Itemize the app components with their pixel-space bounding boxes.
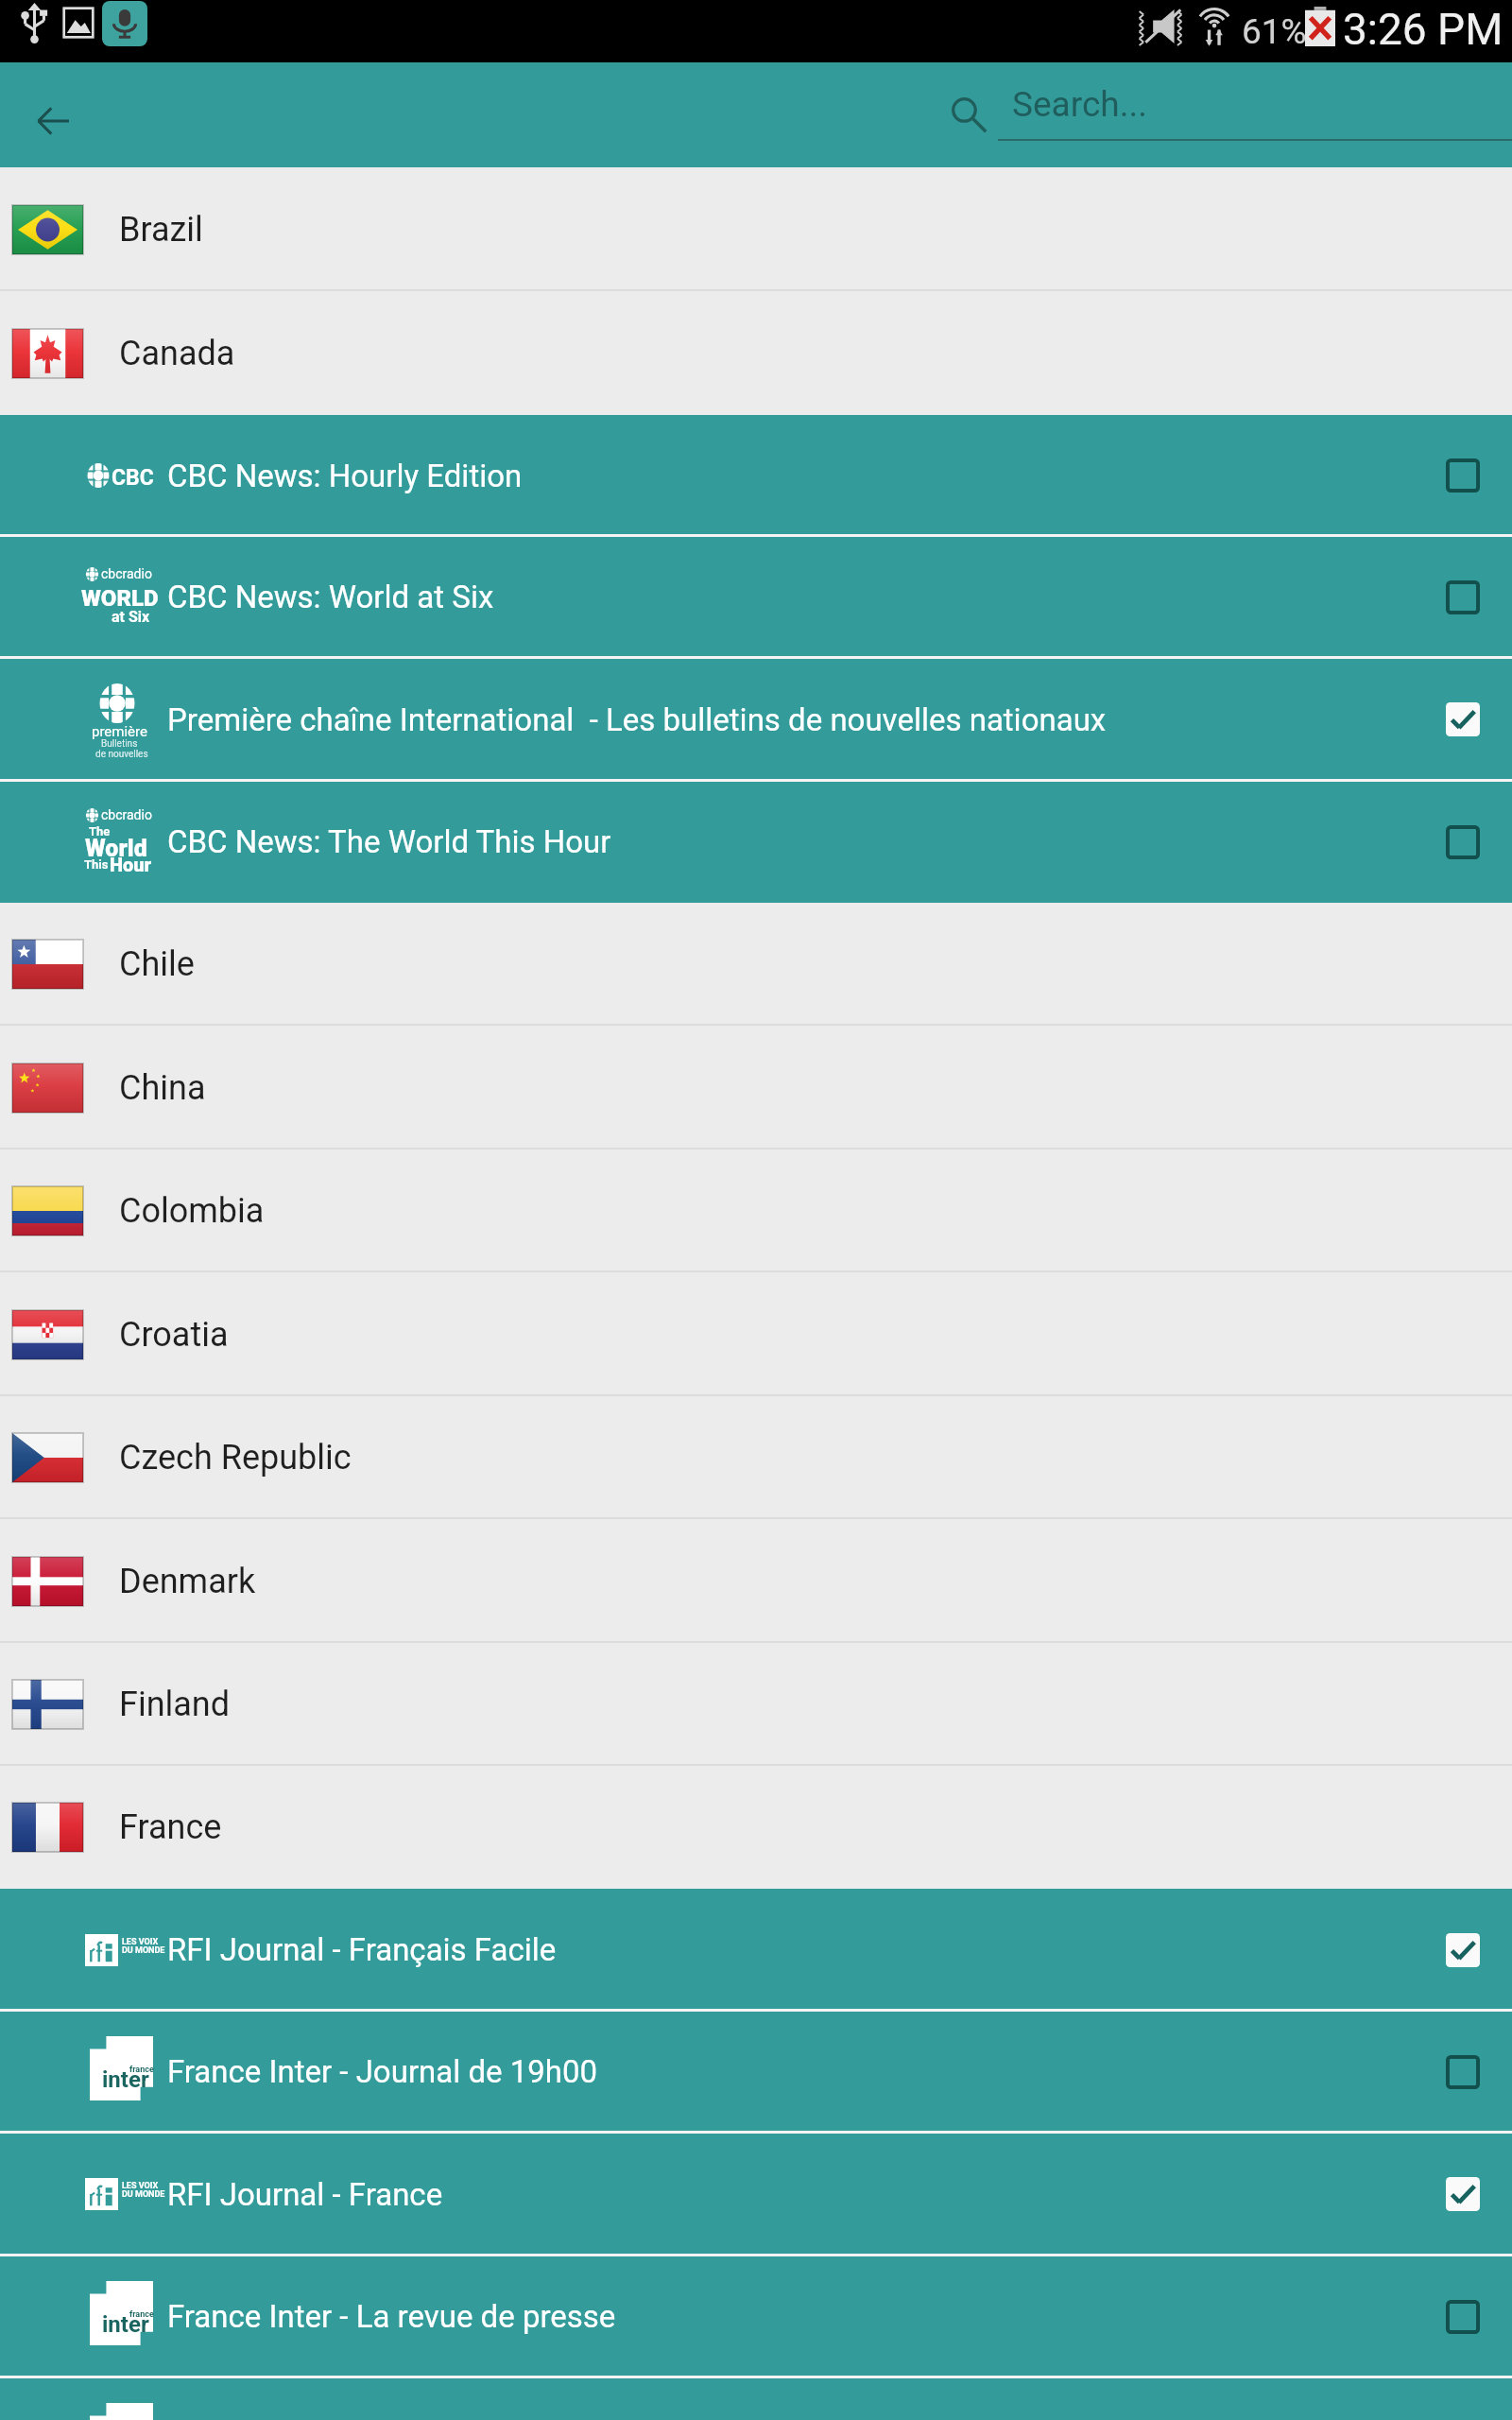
staticText: DU MONDE bbox=[122, 2189, 165, 2200]
button[interactable]: cbcradio bbox=[0, 781, 1512, 903]
staticText: Hour bbox=[110, 854, 152, 875]
staticText: DU MONDE bbox=[122, 1945, 165, 1956]
staticText: This bbox=[84, 857, 109, 872]
button[interactable]: Colombia bbox=[0, 1149, 1512, 1272]
button[interactable]: Czech Republic bbox=[0, 1396, 1512, 1519]
staticText: première bbox=[92, 723, 147, 740]
staticText: CBC News: World at Six bbox=[167, 579, 1446, 615]
staticText: Croatia bbox=[119, 1315, 229, 1355]
staticText: france bbox=[129, 2309, 154, 2320]
staticText: CBC News: Hourly Edition bbox=[167, 458, 1446, 494]
button[interactable]: LES VOIX bbox=[0, 1889, 1512, 2011]
staticText: LES VOIX bbox=[122, 2181, 159, 2191]
staticText: Première chaîne International - Les bull… bbox=[167, 701, 1446, 738]
staticText: at Six bbox=[112, 608, 150, 626]
button[interactable]: France bbox=[0, 1766, 1512, 1889]
staticText: CBC bbox=[112, 465, 154, 491]
button[interactable]: cbcradio bbox=[0, 536, 1512, 658]
staticText: Search... bbox=[1012, 84, 1147, 125]
staticText: RFI Journal - France bbox=[167, 2176, 1446, 2213]
button[interactable]: france bbox=[0, 2377, 1512, 2420]
staticText: Bulletins bbox=[101, 738, 138, 750]
staticText: cbcradio bbox=[101, 566, 152, 581]
staticText: France bbox=[119, 1807, 222, 1847]
staticText: WORLD bbox=[81, 585, 155, 612]
staticText: Colombia bbox=[119, 1191, 265, 1231]
staticText: Finland bbox=[119, 1685, 231, 1724]
button[interactable]: Brazil bbox=[0, 167, 1512, 291]
button[interactable]: Chile bbox=[0, 903, 1512, 1026]
staticText: France Inter - Journal de 19h00 bbox=[167, 2053, 1446, 2090]
staticText: france bbox=[129, 2065, 154, 2075]
button[interactable]: LES VOIX bbox=[0, 2133, 1512, 2256]
button[interactable]: Navigate back bbox=[13, 81, 93, 161]
button[interactable]: france bbox=[0, 2011, 1512, 2133]
button[interactable]: france bbox=[0, 2256, 1512, 2377]
button[interactable]: Canada bbox=[0, 291, 1512, 415]
button[interactable]: CBC bbox=[0, 415, 1512, 536]
staticText: RFI Journal - Français Facile bbox=[167, 1931, 1446, 1968]
staticText: LES VOIX bbox=[122, 1937, 159, 1947]
button[interactable]: Croatia bbox=[0, 1272, 1512, 1396]
staticText: inter bbox=[102, 2066, 149, 2093]
button[interactable]: Finland bbox=[0, 1643, 1512, 1766]
staticText: 61% bbox=[1242, 11, 1307, 52]
staticText: 3:26 PM bbox=[1343, 4, 1503, 55]
staticText: The bbox=[89, 824, 111, 838]
staticText: Czech Republic bbox=[119, 1438, 352, 1478]
staticText: CBC News: The World This Hour bbox=[167, 823, 1446, 860]
staticText: inter bbox=[102, 2311, 149, 2338]
staticText: France Inter - La revue de presse bbox=[167, 2298, 1446, 2335]
button[interactable]: China bbox=[0, 1026, 1512, 1149]
staticText: World bbox=[85, 835, 147, 862]
staticText: Chile bbox=[119, 944, 195, 984]
staticText: Brazil bbox=[119, 210, 203, 250]
button[interactable]: Denmark bbox=[0, 1519, 1512, 1643]
staticText: de nouvelles bbox=[95, 749, 148, 760]
button[interactable]: Search bbox=[935, 80, 1003, 148]
staticText: cbcradio bbox=[101, 807, 152, 822]
staticText: China bbox=[119, 1068, 206, 1108]
staticText: Denmark bbox=[119, 1562, 256, 1601]
staticText: Canada bbox=[119, 334, 235, 373]
button[interactable]: première bbox=[0, 658, 1512, 781]
